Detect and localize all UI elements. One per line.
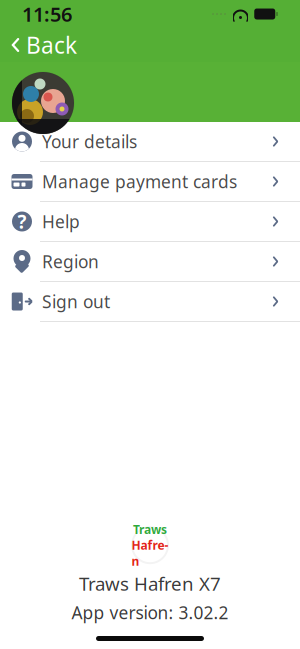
button[interactable]: ? bbox=[0, 202, 300, 242]
staticText: ? bbox=[17, 209, 26, 234]
staticText: Manage payment cards bbox=[42, 170, 237, 193]
button[interactable]: Back bbox=[0, 23, 89, 67]
staticText: Help bbox=[42, 210, 80, 233]
staticText: Your details bbox=[42, 130, 137, 153]
staticText: Hafren bbox=[131, 537, 168, 569]
staticText: App version: 3.02.2 bbox=[71, 601, 228, 624]
staticText: Region bbox=[42, 250, 99, 273]
button[interactable]: Your details bbox=[0, 122, 300, 162]
staticText: 11:56 bbox=[22, 1, 72, 27]
button[interactable]: Sign out bbox=[0, 282, 300, 322]
button[interactable]: Region bbox=[0, 242, 300, 282]
button[interactable]: Manage payment cards bbox=[0, 162, 300, 202]
staticText: Back bbox=[26, 30, 77, 60]
staticText: Traws bbox=[133, 521, 167, 537]
staticText: Sign out bbox=[42, 290, 110, 313]
staticText: Traws Hafren X7 bbox=[79, 571, 221, 596]
